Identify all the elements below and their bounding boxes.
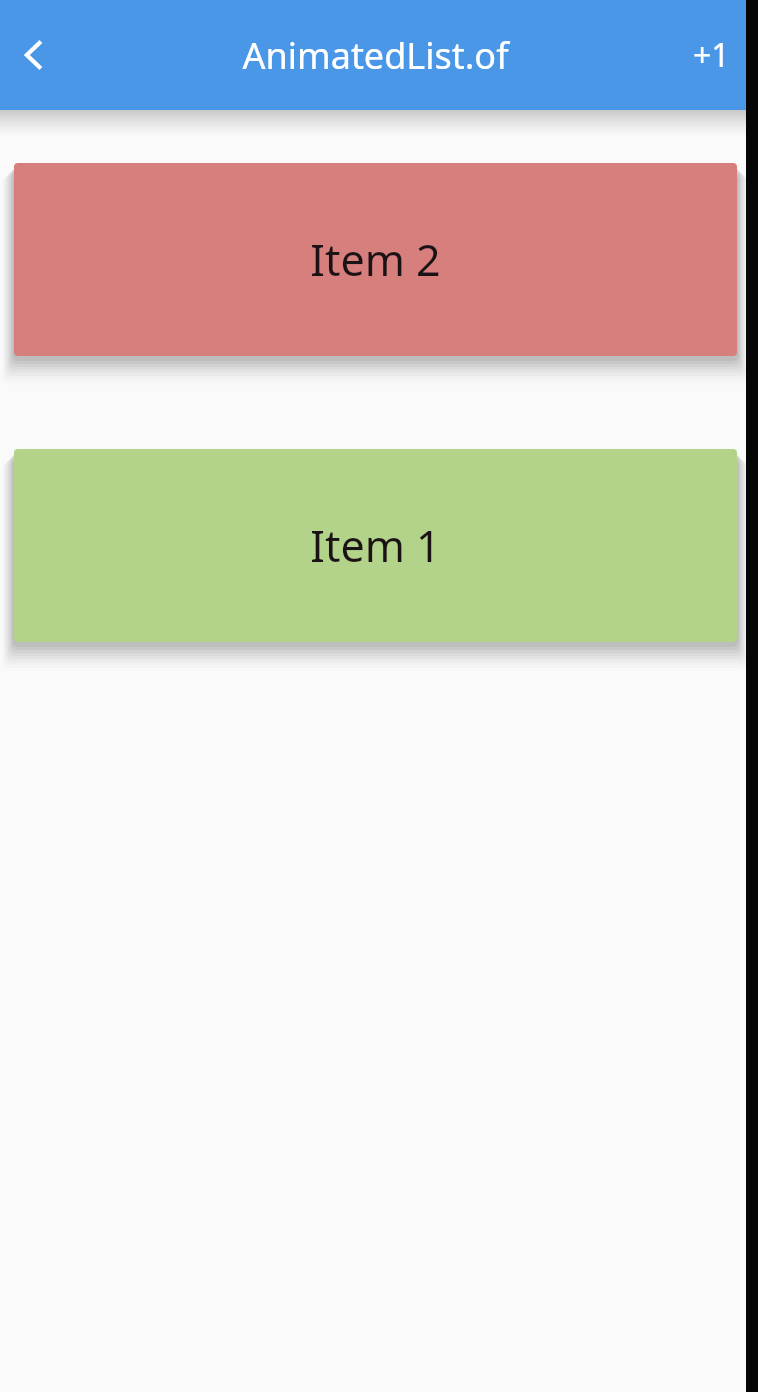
- button[interactable]: Back: [4, 25, 64, 85]
- button[interactable]: +1: [679, 21, 744, 89]
- staticText: AnimatedList.of: [242, 31, 509, 80]
- staticText: +1: [693, 33, 730, 77]
- button[interactable]: Item 2: [14, 163, 737, 356]
- button[interactable]: Item 1: [14, 449, 737, 642]
- staticText: Item 1: [310, 516, 441, 575]
- staticText: Item 2: [310, 230, 441, 289]
